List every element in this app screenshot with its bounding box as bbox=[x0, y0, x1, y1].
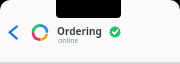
button[interactable]: Back bbox=[4, 22, 24, 42]
staticText: online bbox=[58, 36, 79, 46]
staticText: Ordering bbox=[57, 24, 102, 38]
